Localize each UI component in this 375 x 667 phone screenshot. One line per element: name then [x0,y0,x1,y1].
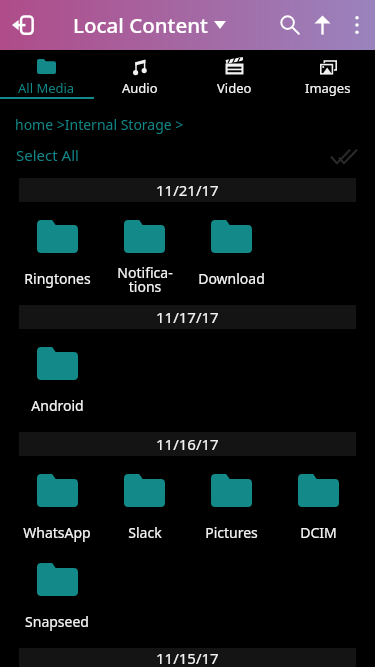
button[interactable]: More options [335,3,375,47]
staticText: Slack [128,523,162,542]
staticText: home >Internal Storage > [15,115,184,134]
staticText: Local Content [73,11,208,39]
staticText: Video [217,79,252,97]
staticText: DCIM [300,523,337,542]
staticText: 11/16/17 [156,434,219,454]
button[interactable]: Upload [300,3,344,47]
button[interactable]: Select all items [325,146,362,168]
button[interactable]: Local Content [73,11,226,39]
button[interactable]: Audio [93,50,187,100]
staticText: Audio [122,79,158,97]
button[interactable]: Android [13,347,101,420]
staticText: Snapseed [25,612,89,631]
staticText: Images [305,79,351,97]
staticText: 11/17/17 [156,307,219,327]
button[interactable]: DCIM [275,474,362,547]
button[interactable]: Search [268,3,312,47]
button[interactable]: Notifica- tions [101,220,188,293]
staticText: Select All [16,145,79,165]
button[interactable]: Ringtones [13,220,101,293]
button[interactable]: Video [187,50,281,100]
staticText: Android [31,396,84,415]
staticText: All Media [18,79,75,97]
button[interactable]: Pictures [188,474,275,547]
button[interactable]: Exit [0,1,48,49]
button[interactable]: Images [281,50,375,100]
button[interactable]: All Media [0,50,93,100]
staticText: Notifica- tions [117,263,173,293]
button[interactable]: Download [188,220,275,293]
staticText: Ringtones [24,269,91,288]
staticText: WhatsApp [23,523,91,542]
button[interactable]: Snapseed [13,563,101,636]
staticText: 11/15/17 [156,648,219,667]
staticText: Download [198,269,265,288]
button[interactable]: Select All [16,145,79,165]
staticText: 11/21/17 [156,180,219,200]
button[interactable]: Slack [101,474,188,547]
staticText: Pictures [205,523,258,542]
button[interactable]: WhatsApp [13,474,101,547]
